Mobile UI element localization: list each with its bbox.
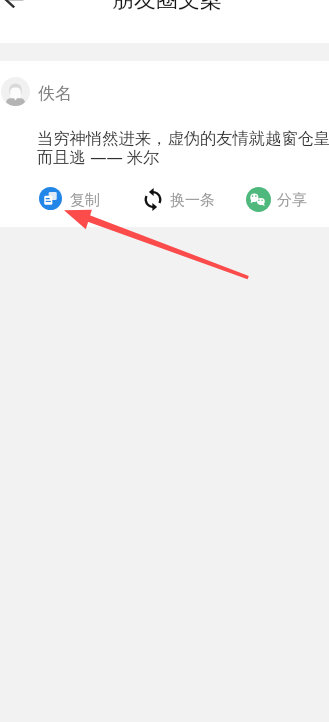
button[interactable]: 分享 bbox=[240, 179, 310, 219]
staticText: 当穷神悄然进来，虚伪的友情就越窗仓皇而且逃 —— 米尔 bbox=[37, 128, 329, 168]
button[interactable]: 换一条 bbox=[138, 179, 220, 219]
staticText: 复制 bbox=[70, 191, 100, 210]
staticText: 佚名 bbox=[38, 83, 72, 104]
staticText: 换一条 bbox=[170, 191, 215, 210]
button[interactable]: Back bbox=[0, 0, 38, 14]
staticText: 分享 bbox=[277, 191, 307, 210]
button[interactable]: 复制 bbox=[33, 179, 103, 219]
staticText: 朋友圈文案 bbox=[112, 0, 222, 14]
